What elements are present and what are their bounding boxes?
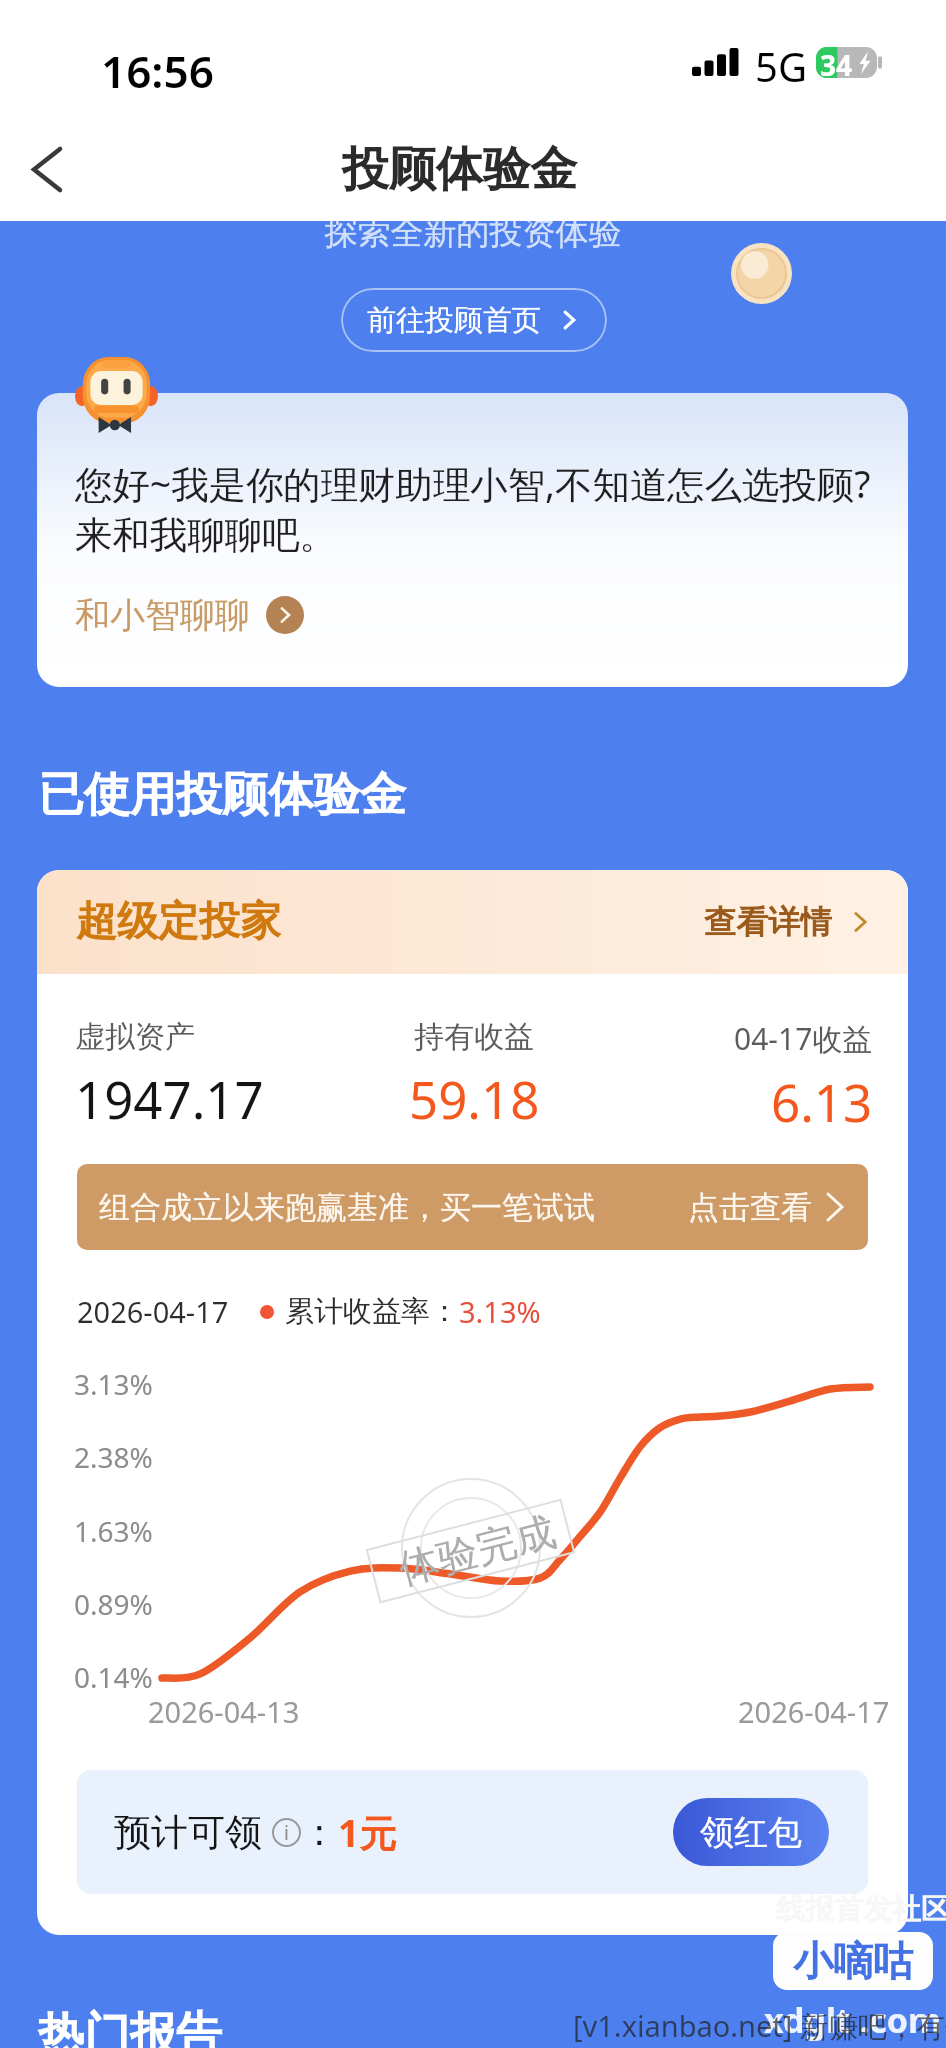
staticText: 2026-04-13 <box>148 1692 300 1731</box>
staticText: 前往投顾首页 <box>367 302 541 339</box>
staticText: 6.13 <box>771 1067 873 1136</box>
staticText: 点击查看 <box>688 1188 812 1227</box>
staticText: 探索全新的投资体验 <box>0 212 946 254</box>
staticText: 小嘀咕 <box>793 1936 913 1986</box>
staticText: 04-17收益 <box>734 1018 873 1059</box>
staticText: 体验完成 <box>388 1504 565 1595</box>
staticText: 5G <box>755 39 807 93</box>
button[interactable]: 领红包 <box>673 1798 829 1866</box>
button[interactable]: 返回 <box>0 122 94 216</box>
staticText: 领红包 <box>700 1811 802 1854</box>
button[interactable]: 超级定投家 <box>37 870 908 974</box>
staticText: 累计收益率： <box>285 1293 459 1330</box>
staticText: 虚拟资产 <box>75 1018 195 1056</box>
button[interactable]: 组合成立以来跑赢基准，买一笔试试 <box>77 1164 868 1250</box>
staticText: 投顾体验金 <box>342 140 577 199</box>
staticText: 线报首发社区 <box>776 1891 946 1928</box>
other: 信号 <box>692 48 739 76</box>
staticText: [v1.xianbao.net] 新赚吧，有你更精彩！ <box>573 2006 946 2046</box>
staticText: 59.18 <box>409 1064 540 1133</box>
button[interactable]: 您好~我是你的理财助理小智,不知道怎么选投顾? <box>37 393 908 687</box>
staticText: xdglt .com <box>764 1997 942 2043</box>
staticText: i <box>284 1820 289 1846</box>
staticText: 已使用投顾体验金 <box>38 766 406 824</box>
button[interactable]: 前往投顾首页 <box>341 288 607 352</box>
staticText: 2.38% <box>74 1438 153 1476</box>
staticText: 0.14% <box>74 1658 153 1696</box>
staticText: 超级定投家 <box>76 896 281 948</box>
staticText: 预计可领 <box>114 1809 262 1856</box>
staticText: 热门报告 <box>38 2006 222 2048</box>
staticText: 1元 <box>338 1807 397 1858</box>
staticText: 来和我聊聊吧。 <box>75 512 337 559</box>
staticText: 3.13% <box>459 1292 541 1331</box>
staticText: 2026-04-17 <box>77 1292 229 1331</box>
staticText: 1.63% <box>74 1512 153 1550</box>
staticText: 查看详情 <box>704 902 832 942</box>
staticText: 3.13% <box>74 1365 153 1403</box>
button[interactable]: 和小智聊聊 <box>75 593 304 637</box>
staticText: 0.89% <box>74 1585 153 1623</box>
other: 说明 <box>272 1818 301 1847</box>
staticText: 16:56 <box>101 41 214 101</box>
staticText: 和小智聊聊 <box>75 593 250 637</box>
staticText: 34 <box>820 46 853 77</box>
staticText: 组合成立以来跑赢基准，买一笔试试 <box>99 1188 595 1227</box>
staticText: 1947.17 <box>75 1064 264 1133</box>
staticText: 2026-04-17 <box>738 1692 890 1731</box>
staticText: 您好~我是你的理财助理小智,不知道怎么选投顾? <box>75 458 871 509</box>
staticText: 持有收益 <box>414 1018 534 1056</box>
staticText: ： <box>301 1809 338 1856</box>
